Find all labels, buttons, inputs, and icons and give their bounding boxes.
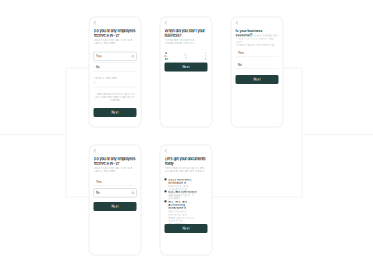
button[interactable]: Back <box>163 20 168 26</box>
staticText: No <box>96 191 100 194</box>
button[interactable]: No <box>235 62 278 68</box>
staticText: Here's what you're going to need, you ca… <box>164 167 205 173</box>
staticText: Is your business seasonal? <box>235 29 262 37</box>
staticText: Month <box>164 51 167 61</box>
staticText: Do you or any employees receive a W-2? <box>93 29 135 38</box>
staticText: Next <box>111 111 118 114</box>
staticText: Please enter the date your business star… <box>164 39 195 45</box>
staticText: When did you start your business? <box>164 29 204 38</box>
staticText: Include part-time, and filter your payro… <box>93 39 132 45</box>
staticText: Day <box>184 53 187 59</box>
staticText: These instructions don't apply to you. N… <box>95 92 135 102</box>
button[interactable]: Next <box>93 202 136 211</box>
button[interactable]: Back <box>92 148 97 154</box>
staticText: This is your tax ID, if you haven't. <box>168 194 194 200</box>
button[interactable]: Yes <box>235 50 278 56</box>
staticText: 2023 Form 1065, Schedule K <box>168 178 192 184</box>
staticText: We'll file W-2s guidelines, also several… <box>168 210 193 228</box>
staticText: Let's get your documents ready <box>164 157 205 166</box>
staticText: Next <box>182 227 189 230</box>
staticText: Next <box>182 65 189 69</box>
button[interactable]: Next <box>164 62 207 71</box>
button[interactable]: Back <box>163 148 168 154</box>
staticText: Next <box>111 205 118 208</box>
staticText: Include part-time, and filter your payro… <box>93 167 132 173</box>
staticText: No <box>238 63 242 67</box>
staticText: Records of your company's filed returns … <box>168 185 195 197</box>
staticText: Yes <box>96 54 102 58</box>
button[interactable]: Back <box>234 20 239 26</box>
button[interactable]: Yes <box>93 52 136 61</box>
staticText: U.S. and EIN letters <box>168 190 196 193</box>
staticText: Next <box>253 78 260 81</box>
staticText: Current # employees <box>93 76 116 80</box>
button[interactable]: Back <box>92 20 97 26</box>
button[interactable]: Yes <box>93 179 136 185</box>
staticText: Enter any dates in your business cycle i… <box>235 34 277 46</box>
staticText: Yes <box>96 180 102 184</box>
staticText: Yes <box>238 51 244 55</box>
staticText: No <box>96 65 100 69</box>
staticText: 0 <box>93 81 95 84</box>
button[interactable]: No <box>93 64 136 70</box>
button[interactable]: Next <box>93 108 136 117</box>
button[interactable]: Next <box>235 75 278 84</box>
button[interactable]: Next <box>164 224 207 233</box>
staticText: W2, W3, and accounting forms 1099-X <box>168 200 187 209</box>
staticText: Do you or any employees receive a W-2? <box>93 157 135 166</box>
button[interactable]: No <box>93 188 136 197</box>
staticText: Year <box>204 51 207 61</box>
